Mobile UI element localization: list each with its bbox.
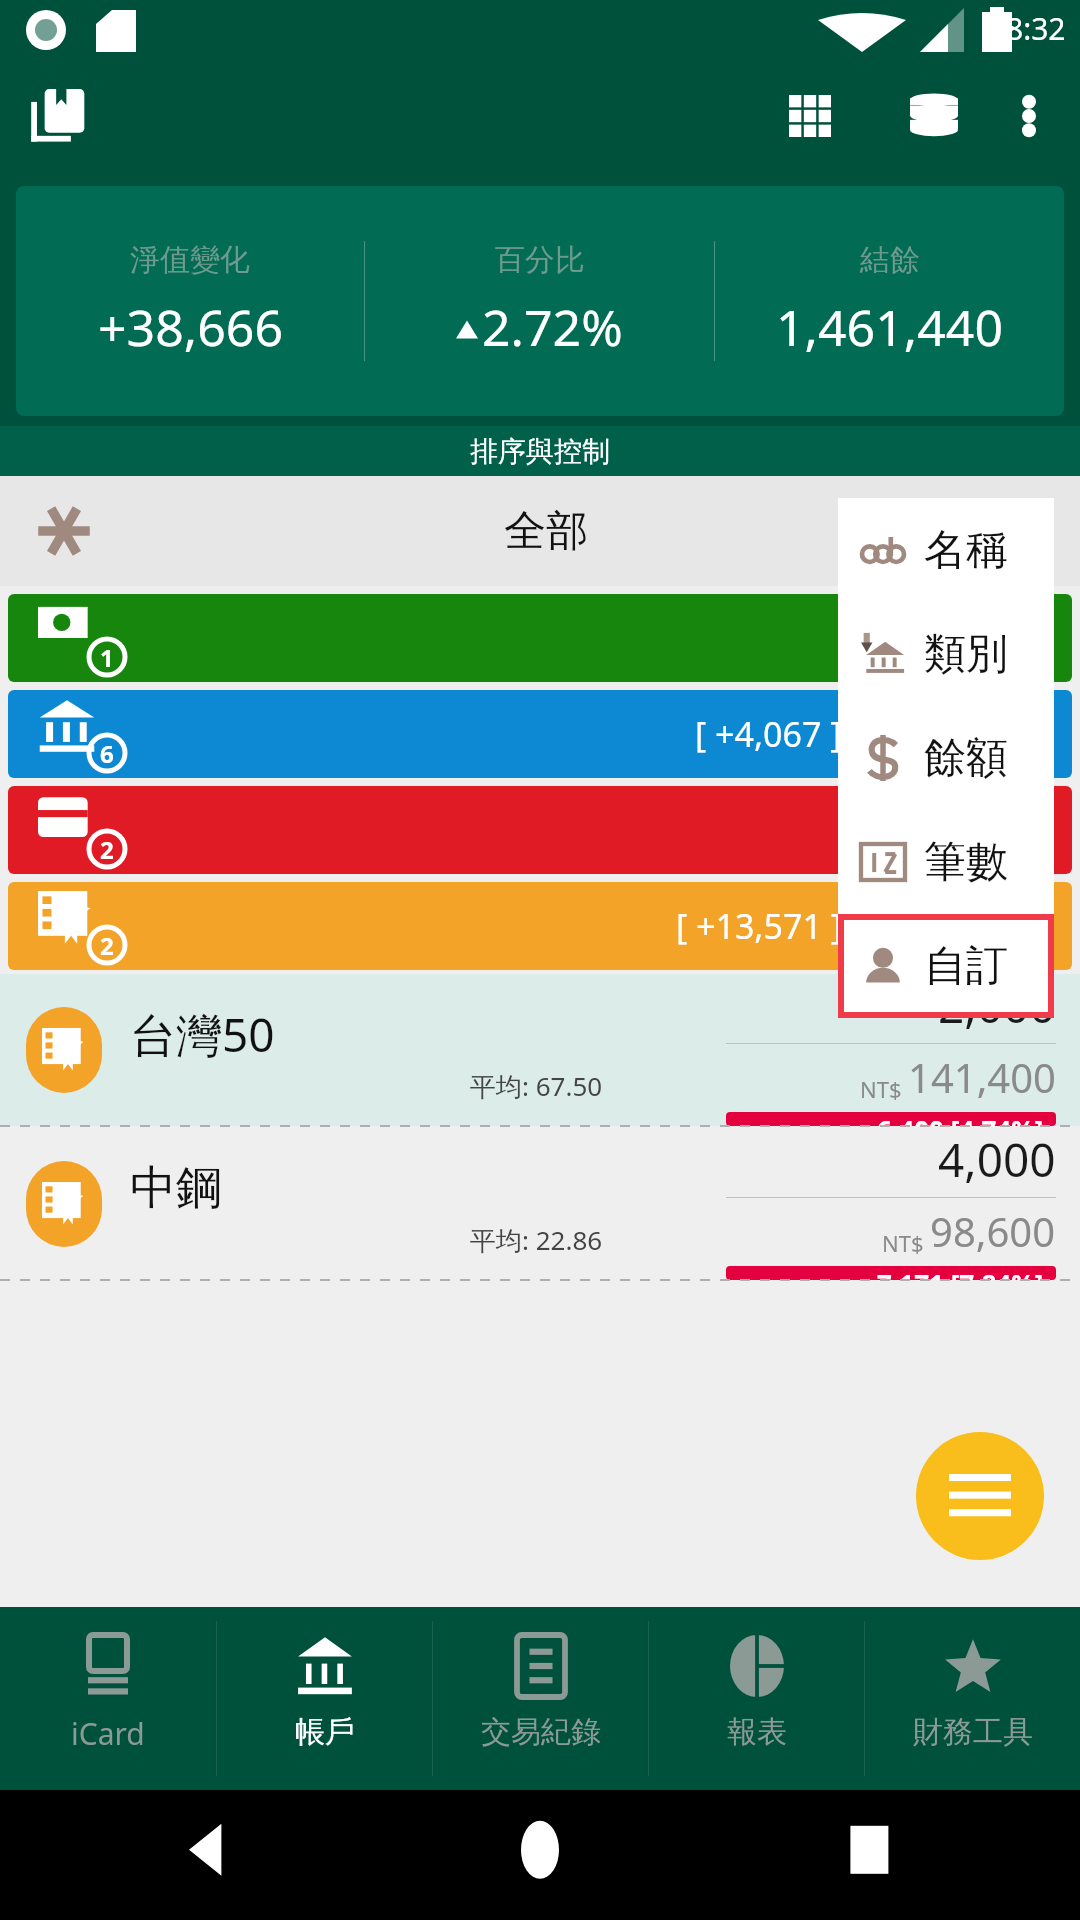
staticText: NT$ [882, 1228, 924, 1258]
staticText: 98,600 [930, 1204, 1056, 1258]
staticText: 百分比 [495, 241, 585, 279]
staticText: 2.72% [482, 293, 623, 361]
button[interactable] [8, 594, 1072, 682]
staticText: 2 [100, 929, 114, 962]
staticText: 財務工具 [913, 1713, 1033, 1751]
staticText: 淨值變化 [130, 241, 250, 279]
button[interactable]: [ +4,067 ] [8, 690, 1072, 778]
staticText: 1 [100, 641, 114, 674]
staticText: 帳戶 [295, 1713, 355, 1751]
button[interactable]: Menu [916, 1432, 1044, 1560]
staticText: 6 [100, 737, 114, 770]
staticText: NT$ [860, 1074, 902, 1104]
staticText: 平均: 67.50 [470, 1068, 603, 1104]
button[interactable]: Grid view [774, 80, 846, 152]
button[interactable]: 中鋼 [0, 1128, 1080, 1280]
staticText: [ +13,571 ] [676, 903, 842, 949]
staticText: 自訂 [924, 940, 1008, 993]
button[interactable]: More options [996, 83, 1062, 149]
staticText: 排序與控制 [470, 434, 610, 469]
staticText: 結餘 [860, 241, 920, 279]
staticText: 中鋼 [130, 1159, 222, 1217]
staticText: 2 [100, 833, 114, 866]
button[interactable]: 報表 [649, 1607, 864, 1790]
button[interactable] [8, 786, 1072, 874]
staticText: 6,400 [4.74%] [877, 1112, 1044, 1126]
staticText: 8:32 [1006, 8, 1066, 49]
button[interactable]: 類別 [838, 602, 1054, 706]
staticText: 平均: 22.86 [470, 1222, 603, 1258]
staticText: iCard [71, 1713, 145, 1754]
button[interactable]: 台灣50 [0, 974, 1080, 1126]
staticText: [ +4,067 ] [695, 711, 842, 757]
button[interactable]: 淨值變化 [16, 186, 1064, 416]
staticText: 2,000 [938, 974, 1056, 1037]
staticText: 1,461,440 [776, 293, 1003, 361]
staticText: 4,000 [938, 1128, 1056, 1191]
staticText: 交易紀錄 [481, 1713, 601, 1751]
button[interactable]: [ +13,571 ] [8, 882, 1072, 970]
staticText: 141,400 [908, 1050, 1056, 1104]
button[interactable]: 全部 [0, 476, 1080, 586]
staticText: 全部 [504, 505, 588, 558]
button[interactable]: iCard [0, 1607, 216, 1790]
button[interactable]: 自訂 [844, 920, 1048, 1012]
staticText: 台灣50 [130, 1003, 275, 1066]
button[interactable]: Database [898, 80, 970, 152]
button[interactable]: 名稱 [838, 498, 1054, 602]
staticText: 7,171 [7.84%] [877, 1266, 1044, 1280]
staticText: 餘額 [924, 732, 1008, 785]
staticText: +38,666 [98, 293, 283, 361]
button[interactable]: 帳戶 [217, 1607, 432, 1790]
button[interactable]: 交易紀錄 [433, 1607, 648, 1790]
staticText: 類別 [924, 628, 1008, 681]
button[interactable]: Books [28, 84, 92, 148]
staticText: 名稱 [924, 524, 1008, 577]
button[interactable]: 排序與控制 [0, 426, 1080, 476]
staticText: 筆數 [924, 836, 1008, 889]
button[interactable]: 餘額 [838, 706, 1054, 810]
button[interactable]: 筆數 [838, 810, 1054, 914]
staticText: 報表 [727, 1713, 787, 1751]
button[interactable]: 財務工具 [865, 1607, 1080, 1790]
